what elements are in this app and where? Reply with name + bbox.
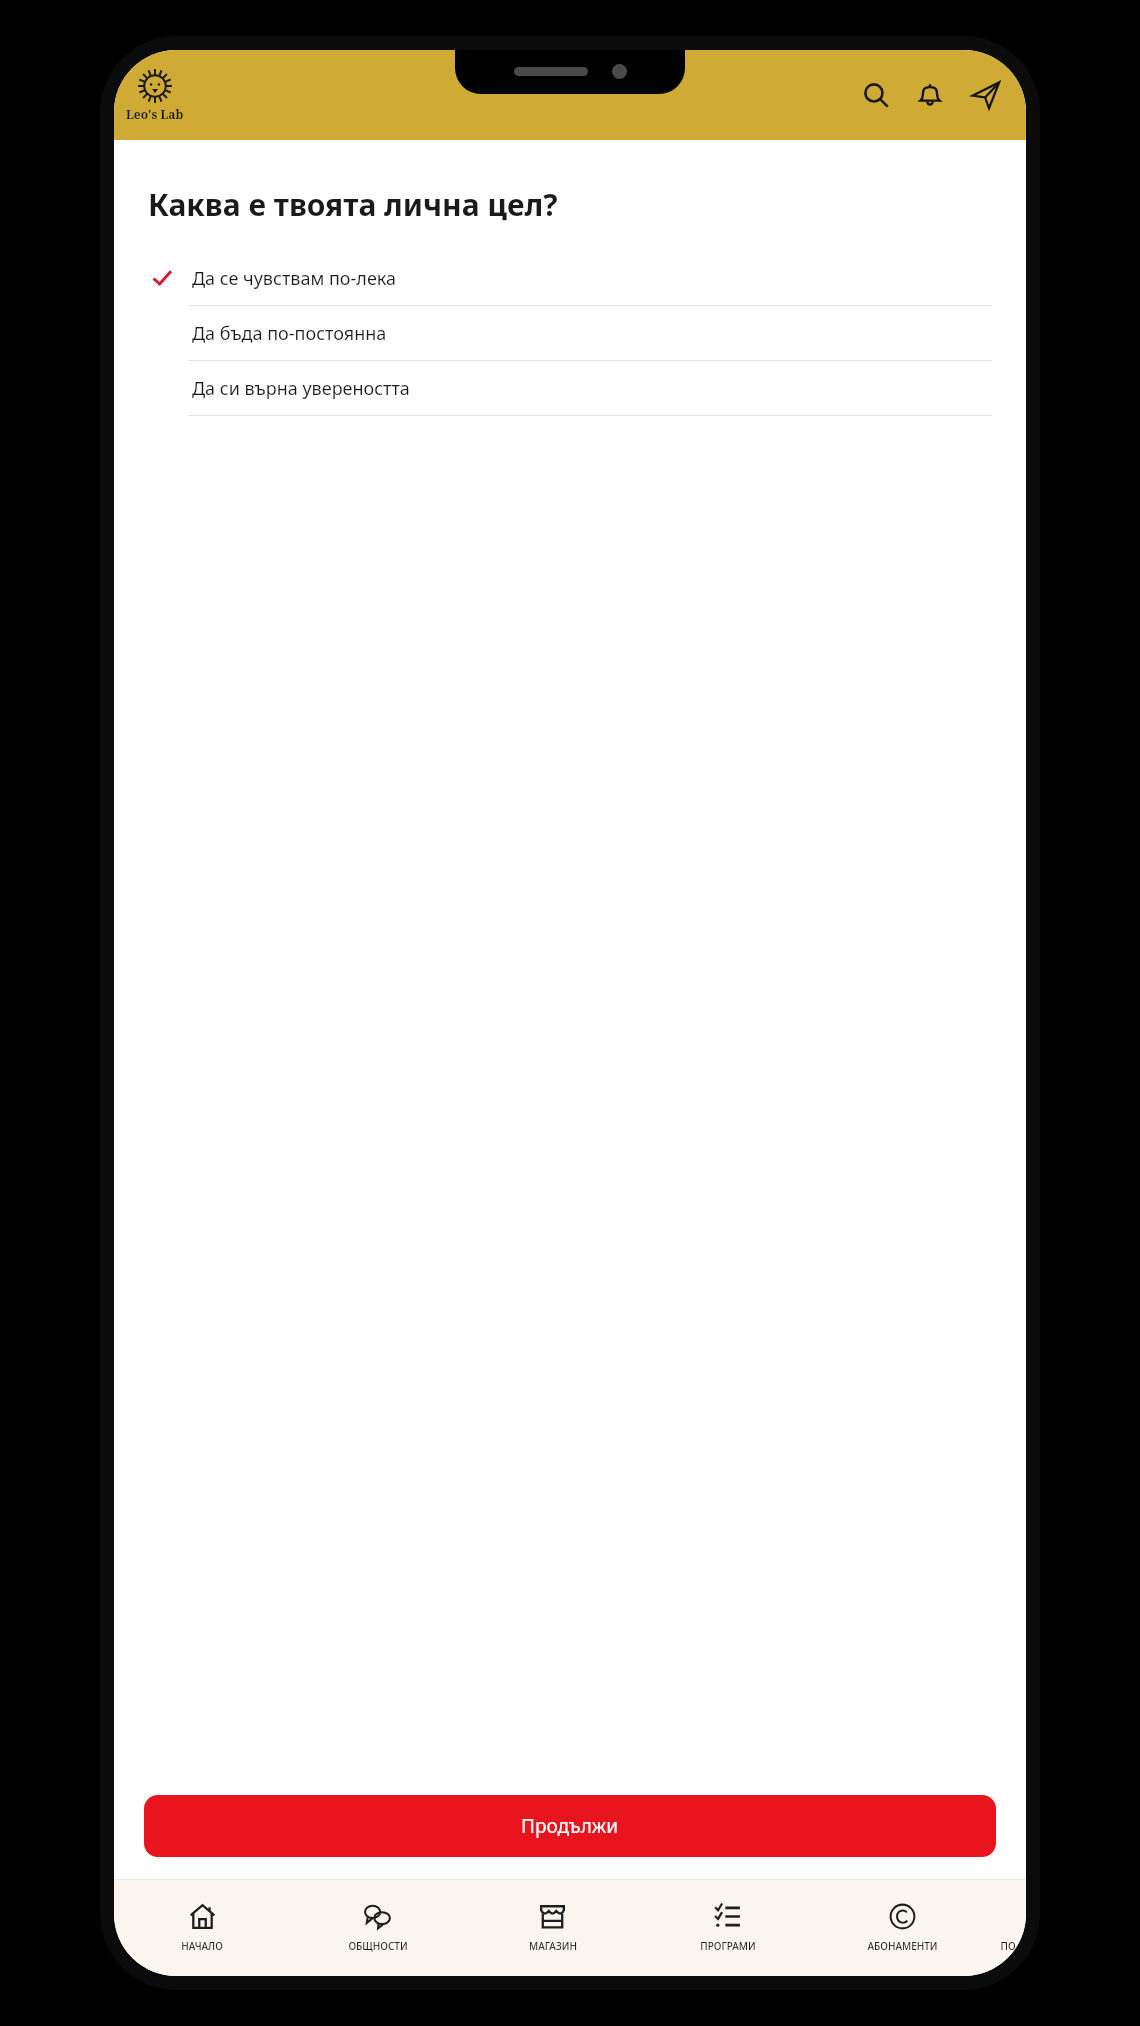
button[interactable]: ПО [990, 1880, 1026, 1976]
button[interactable]: Notifications [910, 75, 950, 115]
button[interactable]: Messages [966, 75, 1006, 115]
button[interactable]: МАГАЗИН [465, 1880, 640, 1976]
staticText: Да си върна увереността [192, 376, 410, 401]
staticText: ПРОГРАМИ [700, 1939, 756, 1953]
button[interactable]: Search [856, 75, 896, 115]
staticText: Leo's Lab [126, 106, 184, 122]
button[interactable]: Да бъда по-постоянна [114, 306, 1026, 361]
staticText: Продължи [521, 1813, 619, 1839]
button[interactable]: ОБЩНОСТИ [290, 1880, 465, 1976]
staticText: АБОНАМЕНТИ [867, 1939, 938, 1953]
button[interactable]: Leo's Lab home [126, 68, 184, 122]
staticText: Каква е твоята лична цел? [148, 184, 558, 225]
staticText: МАГАЗИН [529, 1939, 577, 1953]
button[interactable]: Да се чувствам по-лека [114, 251, 1026, 306]
button[interactable]: Да си върна увереността [114, 361, 1026, 416]
button[interactable]: Продължи [144, 1795, 996, 1857]
button[interactable]: ПРОГРАМИ [640, 1880, 815, 1976]
button[interactable]: НАЧАЛО [114, 1880, 290, 1976]
button[interactable]: АБОНАМЕНТИ [815, 1880, 990, 1976]
staticText: ПО [1000, 1939, 1016, 1953]
staticText: Да се чувствам по-лека [192, 266, 397, 291]
staticText: НАЧАЛО [181, 1939, 223, 1953]
staticText: Да бъда по-постоянна [192, 321, 387, 346]
staticText: ОБЩНОСТИ [348, 1939, 408, 1953]
